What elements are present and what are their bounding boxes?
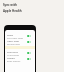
staticText: Apple Health xyxy=(3,9,22,13)
button[interactable]: Toggle xyxy=(27,41,31,43)
staticText: Resting data xyxy=(7,43,20,45)
button[interactable]: Steps xyxy=(5,33,35,39)
staticText: Weight xyxy=(7,56,15,59)
staticText: Sync with xyxy=(3,3,17,7)
button[interactable]: Workouts xyxy=(5,50,35,56)
button[interactable]: Weight xyxy=(5,56,35,62)
button[interactable]: Toggle xyxy=(27,58,31,60)
staticText: Steps xyxy=(7,33,14,36)
staticText: Heart Rate xyxy=(7,39,19,42)
staticText: Workouts xyxy=(7,50,18,53)
button[interactable]: Heart Rate xyxy=(5,39,35,45)
staticText: Sync daily steps xyxy=(7,37,24,39)
staticText: All activities xyxy=(7,54,20,56)
button[interactable]: Toggle xyxy=(27,35,31,37)
button[interactable]: Toggle xyxy=(27,52,31,54)
staticText: Body metrics xyxy=(7,60,21,62)
